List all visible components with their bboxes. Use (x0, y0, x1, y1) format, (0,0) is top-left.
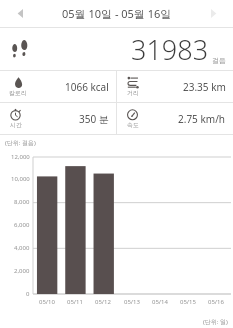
button[interactable]: 거리 (117, 71, 233, 102)
staticText: 8,000 (14, 198, 30, 206)
staticText: 23.35 km (183, 80, 226, 94)
button[interactable]: Previous week (6, 0, 34, 27)
other: Steps (11, 38, 33, 60)
staticText: 2.75 km/h (178, 112, 226, 126)
staticText: 1066 kcal (65, 80, 109, 94)
staticText: (단위: 일) (203, 318, 228, 326)
staticText: 05/16 (208, 298, 224, 306)
button[interactable]: 시간 (0, 103, 116, 134)
button[interactable]: Steps (0, 28, 233, 70)
staticText: 12,000 (11, 153, 30, 161)
staticText: 05/13 (124, 298, 140, 306)
staticText: 05/14 (152, 298, 168, 306)
staticText: 칼로리 (9, 89, 27, 97)
staticText: (단위: 걸음) (5, 139, 36, 147)
staticText: 시간 (10, 121, 22, 129)
staticText: 05/10 (39, 298, 55, 306)
staticText: 05/12 (95, 298, 111, 306)
button[interactable]: 칼로리 (0, 71, 116, 102)
button[interactable]: 속도 (117, 103, 233, 134)
staticText: 05월 10일 - 05월 16일 (62, 6, 172, 21)
staticText: 10,000 (11, 175, 30, 183)
button[interactable]: Next week (199, 0, 227, 27)
staticText: 거리 (127, 89, 139, 97)
staticText: 05/11 (67, 298, 83, 306)
staticText: 4,000 (14, 244, 30, 252)
staticText: 05/15 (180, 298, 196, 306)
staticText: 2,000 (14, 267, 30, 275)
staticText: 350 분 (79, 112, 109, 126)
staticText: 속도 (127, 121, 139, 129)
staticText: 31983 (131, 31, 209, 68)
staticText: 0 (26, 290, 30, 298)
staticText: 6,000 (14, 221, 30, 229)
staticText: 걸음 (212, 56, 226, 65)
